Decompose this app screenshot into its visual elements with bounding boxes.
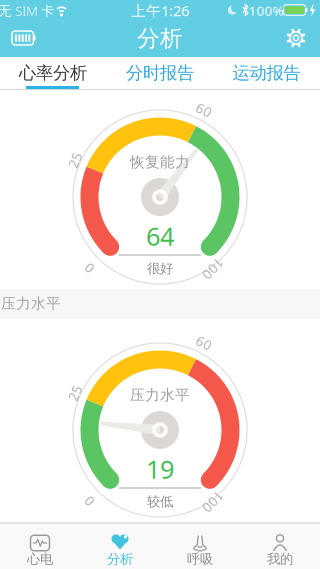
staticText: 压力水平	[1, 294, 61, 312]
button[interactable]: 设置	[274, 18, 318, 58]
button[interactable]: 分析	[80, 523, 160, 569]
staticText: 分时报告	[126, 62, 194, 84]
staticText: 心率分析	[19, 62, 87, 84]
button[interactable]: 设备电量	[0, 18, 48, 58]
staticText: 我的	[267, 551, 293, 567]
button[interactable]: 心率分析	[0, 57, 106, 89]
button[interactable]: 心电	[0, 523, 80, 569]
staticText: 64	[146, 219, 174, 253]
staticText: 分析	[107, 551, 133, 567]
staticText: 上午1:26	[131, 1, 189, 20]
staticText: 很好	[147, 260, 173, 277]
staticText: 0	[85, 259, 93, 277]
button[interactable]: 我的	[240, 523, 320, 569]
staticText: 分析	[137, 25, 183, 52]
staticText: 60	[196, 101, 212, 119]
button[interactable]: 呼吸	[160, 523, 240, 569]
staticText: 100%	[248, 2, 283, 19]
staticText: 60	[196, 334, 212, 352]
staticText: 压力水平	[130, 386, 190, 404]
staticText: 运动报告	[232, 62, 300, 84]
staticText: 0	[85, 492, 93, 510]
button[interactable]: 分时报告	[107, 57, 213, 89]
staticText: 较低	[147, 493, 173, 510]
staticText: 无 SIM 卡	[0, 2, 54, 19]
staticText: 呼吸	[187, 551, 213, 567]
button[interactable]: 运动报告	[213, 57, 319, 89]
staticText: 25	[67, 384, 83, 402]
staticText: 心电	[27, 551, 53, 567]
staticText: 100	[201, 493, 225, 511]
staticText: 19	[146, 452, 174, 486]
staticText: 25	[67, 151, 83, 169]
staticText: 100	[201, 260, 225, 278]
staticText: 恢复能力	[130, 153, 190, 171]
